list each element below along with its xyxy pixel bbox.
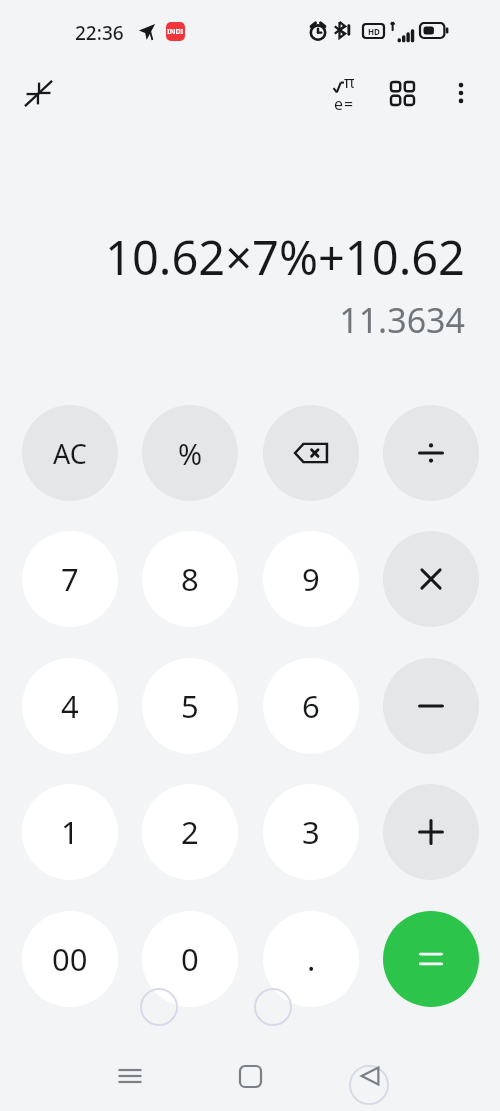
button[interactable]: Equals	[383, 911, 479, 1007]
button[interactable]: 1	[22, 784, 118, 880]
staticText: HD	[368, 26, 380, 37]
button[interactable]: Multiply	[383, 531, 479, 627]
button[interactable]: Recents	[102, 1048, 158, 1104]
staticText: e	[334, 93, 344, 115]
button[interactable]: Collapse	[10, 65, 66, 121]
staticText: 2	[181, 811, 199, 853]
button[interactable]: Divide	[383, 405, 479, 501]
button[interactable]: 9	[263, 531, 359, 627]
staticText: AC	[53, 435, 87, 472]
button[interactable]: 6	[263, 658, 359, 754]
button[interactable]: 8	[142, 531, 238, 627]
button[interactable]: History	[374, 65, 430, 121]
staticText: 11.3634	[339, 297, 465, 343]
staticText: 22:36	[75, 20, 124, 46]
button[interactable]: %	[142, 405, 238, 501]
button[interactable]: Plus	[383, 784, 479, 880]
button[interactable]: AC	[22, 405, 118, 501]
staticText: .	[307, 938, 316, 980]
staticText: 9	[302, 558, 320, 600]
button[interactable]: 5	[142, 658, 238, 754]
button[interactable]: Minus	[383, 658, 479, 754]
button[interactable]: Back	[342, 1048, 398, 1104]
staticText: 4	[61, 685, 79, 727]
button[interactable]: 2	[142, 784, 238, 880]
button[interactable]: 00	[22, 911, 118, 1007]
staticText: 3	[302, 811, 320, 853]
staticText: 8	[181, 558, 199, 600]
staticText: 5	[181, 685, 199, 727]
button[interactable]: Scientific mode	[316, 65, 372, 121]
staticText: %	[178, 434, 203, 473]
button[interactable]: 3	[263, 784, 359, 880]
staticText: 10.62×7%+10.62	[105, 225, 465, 289]
button[interactable]: More options	[433, 65, 489, 121]
staticText: 6	[302, 685, 320, 727]
staticText: 0	[181, 938, 199, 980]
staticText: π	[344, 71, 355, 93]
button[interactable]: Backspace	[263, 405, 359, 501]
staticText: 1	[61, 811, 79, 853]
staticText: =	[344, 93, 354, 115]
staticText: 7	[61, 558, 79, 600]
button[interactable]: Home	[222, 1048, 278, 1104]
button[interactable]: 7	[22, 531, 118, 627]
button[interactable]: 4	[22, 658, 118, 754]
staticText: INDI	[167, 27, 184, 37]
button[interactable]: .	[263, 911, 359, 1007]
staticText: 00	[52, 938, 88, 980]
button[interactable]: 0	[142, 911, 238, 1007]
